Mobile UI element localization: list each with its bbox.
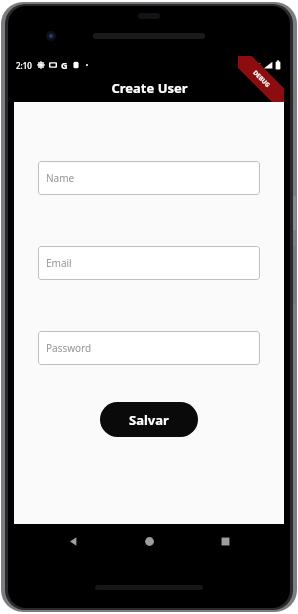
button[interactable]: Name — [38, 161, 260, 195]
staticText: Name — [46, 171, 75, 185]
button[interactable]: Back — [56, 524, 90, 558]
button[interactable]: Recent apps — [208, 524, 242, 558]
button[interactable]: Home — [258, 77, 280, 99]
staticText: 2:10 — [16, 60, 32, 71]
staticText: Email — [46, 256, 72, 270]
staticText: DEBUG — [251, 69, 272, 89]
button[interactable]: Password — [38, 331, 260, 365]
button[interactable]: Salvar — [100, 402, 198, 437]
button[interactable]: Email — [38, 246, 260, 280]
button[interactable]: Home — [132, 524, 166, 558]
staticText: Salvar — [129, 411, 169, 429]
staticText: Password — [46, 341, 92, 355]
staticText: G — [61, 59, 68, 71]
staticText: Create User — [111, 79, 188, 97]
